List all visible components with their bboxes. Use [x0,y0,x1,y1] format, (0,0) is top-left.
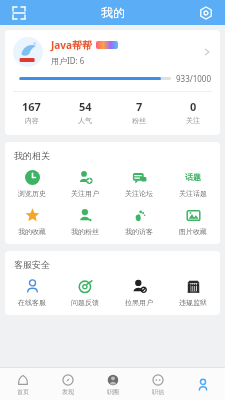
button[interactable]: 54 [58,99,112,125]
staticText: 图片收藏 [179,227,207,236]
staticText: 在线客服 [18,298,46,307]
button[interactable]: 图片收藏 [166,207,220,236]
staticText: 我的粉丝 [71,227,99,236]
staticText: Java帮帮 [51,38,92,52]
staticText: 人气 [78,116,92,125]
staticText: 我的访客 [125,227,153,236]
button[interactable]: 违规监狱 [166,278,220,307]
staticText: 0 [190,99,197,114]
button[interactable]: 问题反馈 [58,278,112,307]
staticText: 我的收藏 [18,227,46,236]
button[interactable]: 我的 [180,368,225,400]
staticText: 54 [79,99,92,114]
staticText: 7 [136,99,143,114]
button[interactable]: Settings [195,2,217,24]
button[interactable]: 167 [5,99,58,125]
staticText: 违规监狱 [179,298,207,307]
staticText: 职信 [152,388,164,396]
staticText: 关注论坛 [125,189,153,198]
staticText: 粉丝 [132,116,146,125]
staticText: 话题 [185,172,201,182]
button[interactable]: 拉黑用户 [112,278,166,307]
staticText: 浏览历史 [18,189,46,198]
staticText: 933/1000 [176,73,212,84]
staticText: 167 [22,99,41,114]
button[interactable]: 我的访客 [112,207,166,236]
staticText: 我的 [101,5,125,20]
button[interactable]: 职圈 [90,368,135,400]
button[interactable]: 我的粉丝 [58,207,112,236]
staticText: 关注话题 [179,189,207,198]
button[interactable]: 首页 [0,368,45,400]
button[interactable]: 职信 [135,368,180,400]
button[interactable]: Scan [8,2,30,24]
button[interactable]: 话题 [166,169,220,198]
staticText: 发现 [62,388,74,396]
staticText: 拉黑用户 [125,298,153,307]
staticText: 问题反馈 [71,298,99,307]
button[interactable]: 发现 [45,368,90,400]
button[interactable]: 浏览历史 [5,169,58,198]
staticText: 客服安全 [14,259,50,270]
staticText: 关注 [186,116,200,125]
button[interactable]: 我的收藏 [5,207,58,236]
button[interactable]: 关注论坛 [112,169,166,198]
staticText: 首页 [17,388,29,396]
staticText: 内容 [25,116,39,125]
button[interactable]: 关注用户 [58,169,112,198]
staticText: 关注用户 [71,189,99,198]
staticText: 我的相关 [14,150,50,161]
button[interactable]: 7 [112,99,166,125]
staticText: 用户ID: 6 [51,55,85,66]
button[interactable]: Java帮帮 [5,30,220,71]
button[interactable]: 0 [166,99,220,125]
staticText: 职圈 [107,388,119,396]
button[interactable]: 在线客服 [5,278,58,307]
